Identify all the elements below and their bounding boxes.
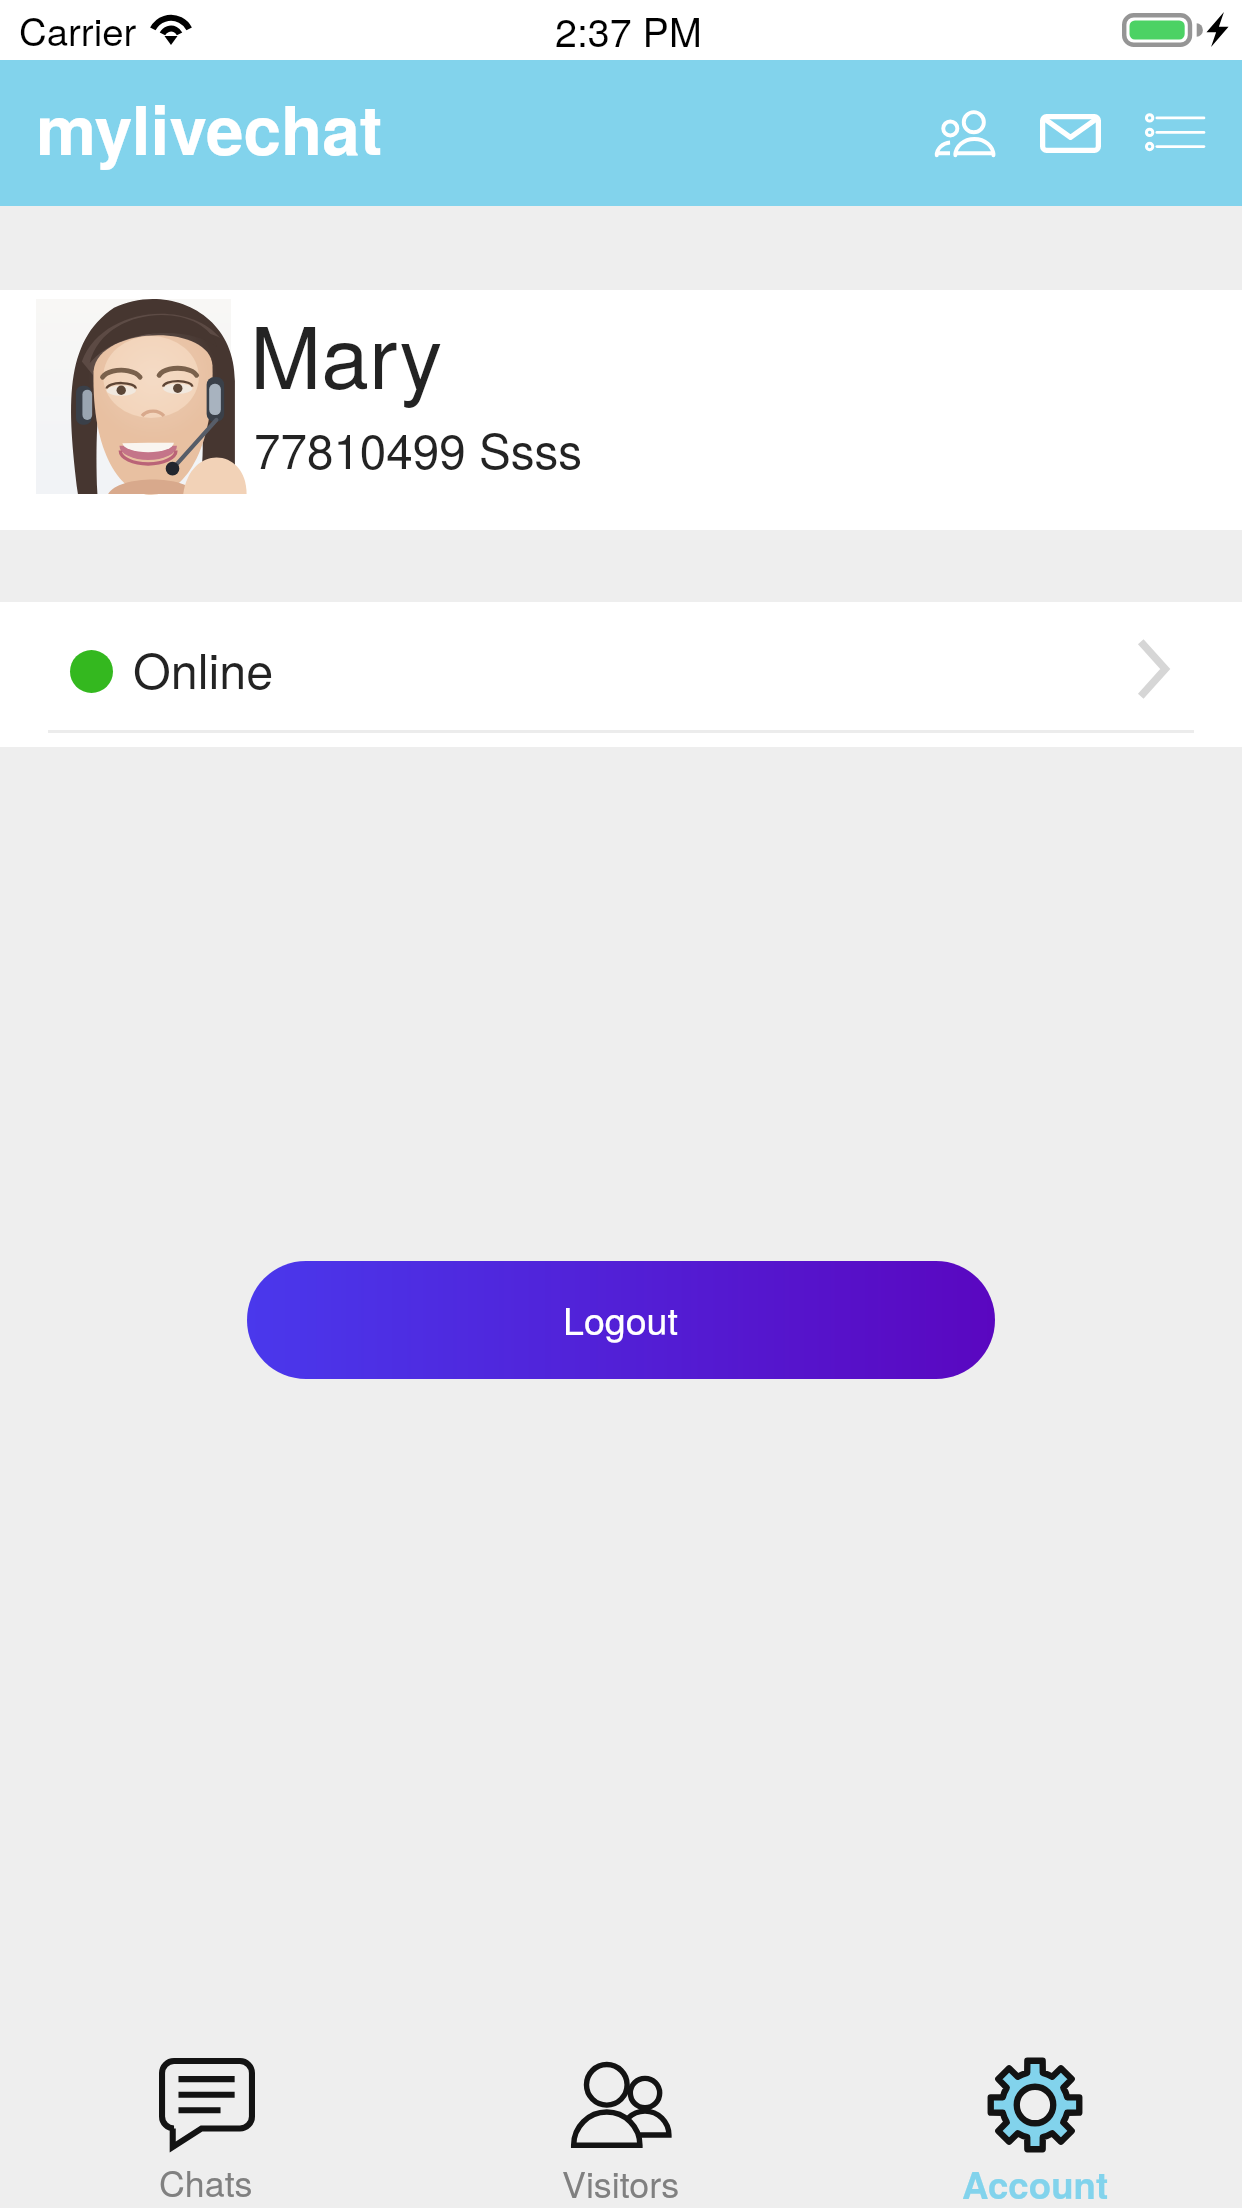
button[interactable]: Account <box>828 2050 1242 2208</box>
staticText: mylivechat <box>36 79 383 176</box>
button[interactable]: Online <box>0 602 1242 747</box>
button[interactable]: Logout <box>247 1261 995 1379</box>
staticText: Logout <box>563 1292 678 1346</box>
button[interactable]: Chats <box>0 2050 414 2208</box>
button[interactable]: Menu <box>1115 78 1235 188</box>
button[interactable]: Visitors <box>905 78 1025 188</box>
staticText: Online <box>133 633 274 702</box>
staticText: Mary <box>250 291 443 414</box>
button[interactable]: Messages <box>1010 78 1130 188</box>
button[interactable]: Visitors <box>414 2050 828 2208</box>
staticText: 2:37 PM <box>555 2 702 58</box>
staticText: 77810499 Ssss <box>254 414 583 482</box>
staticText: Visitors <box>562 2157 680 2208</box>
staticText: Carrier <box>19 2 137 57</box>
button[interactable]: Mary <box>0 290 1242 530</box>
staticText: Account <box>962 2158 1109 2208</box>
staticText: Chats <box>159 2156 253 2207</box>
